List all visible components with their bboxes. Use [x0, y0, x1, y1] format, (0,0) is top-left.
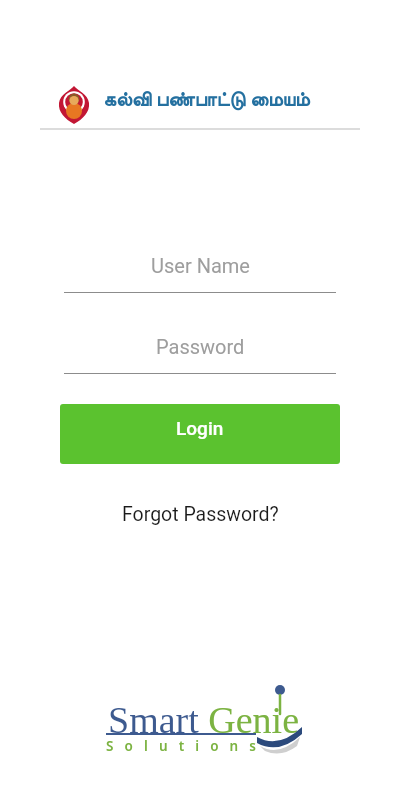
staticText: User Name	[151, 254, 250, 277]
staticText: Login	[176, 417, 224, 439]
staticText: Forgot Password?	[122, 503, 279, 526]
staticText: Password	[156, 335, 245, 358]
button[interactable]: Forgot Password?	[0, 498, 400, 531]
button[interactable]: User Name	[60, 238, 340, 293]
staticText: கல்வி பண்பாட்டு மையம்	[103, 85, 310, 112]
staticText: Smart Genie	[108, 699, 300, 741]
button[interactable]: Password	[60, 319, 340, 374]
staticText: S o l u t i o n s	[106, 737, 260, 755]
button[interactable]: Login	[60, 404, 340, 464]
